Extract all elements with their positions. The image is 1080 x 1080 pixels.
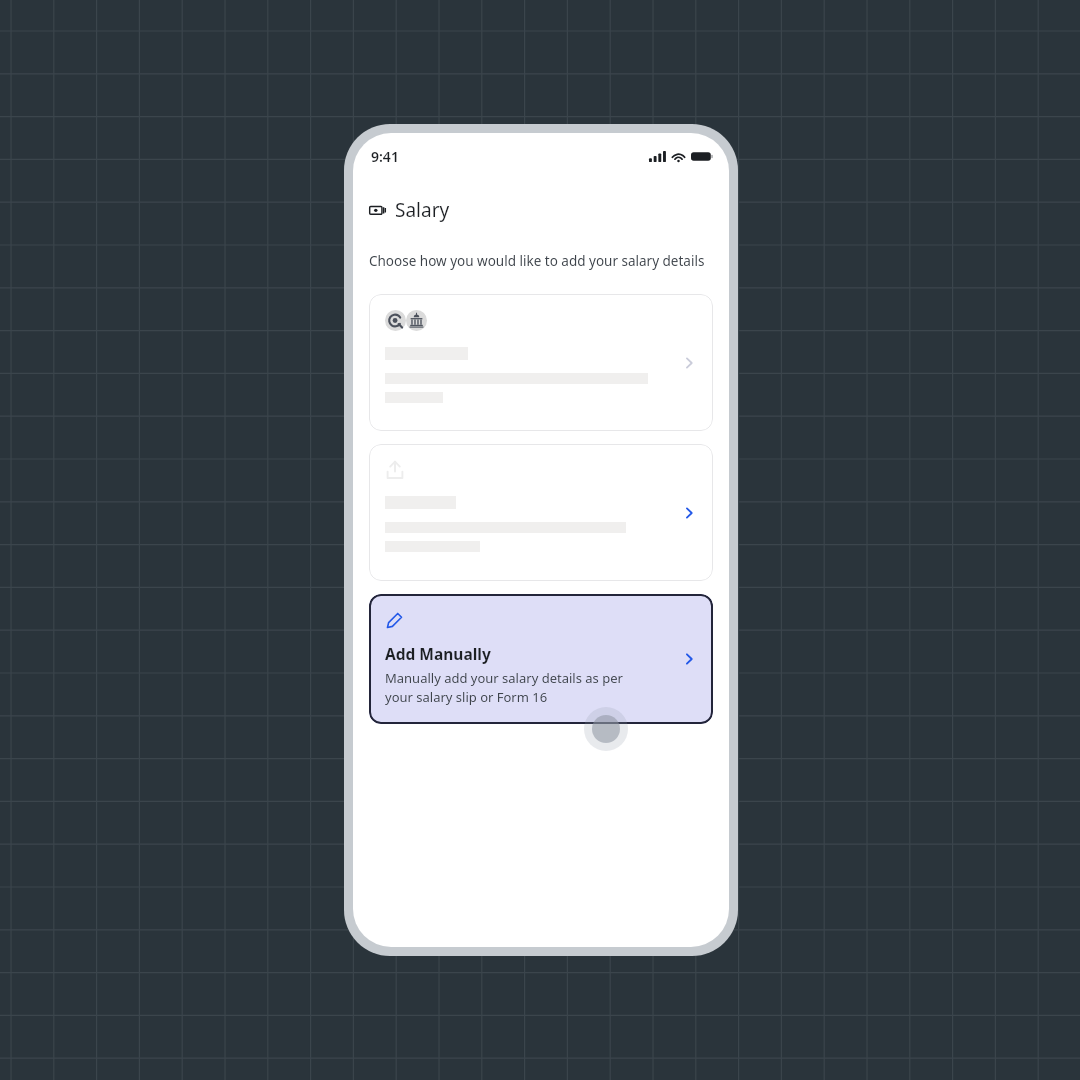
staticText: Salary (395, 197, 450, 223)
other: Fetch salary from portal (679, 353, 699, 373)
other: Open Add Manually (679, 649, 699, 669)
button[interactable]: Add Manually (369, 594, 713, 724)
button[interactable]: Upload salary document (369, 444, 713, 581)
staticText: Add Manually (385, 643, 491, 664)
button[interactable]: Fetch salary from portal (369, 294, 713, 431)
staticText: Choose how you would like to add your sa… (369, 252, 705, 270)
staticText: 9:41 (371, 147, 399, 166)
other: Upload salary document (679, 503, 699, 523)
staticText: Manually add your salary details as per … (385, 669, 623, 706)
